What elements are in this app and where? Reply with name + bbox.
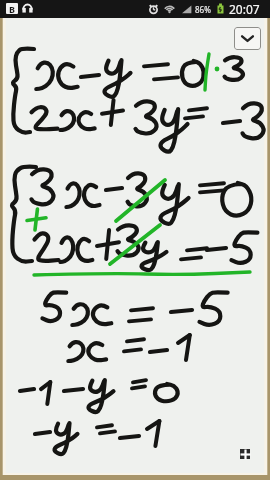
staticText: 20:07 [229, 1, 260, 17]
button[interactable]: Expand [234, 27, 261, 50]
staticText: B [9, 3, 15, 14]
staticText: 86% [195, 4, 211, 15]
button[interactable]: Resize [239, 448, 255, 464]
